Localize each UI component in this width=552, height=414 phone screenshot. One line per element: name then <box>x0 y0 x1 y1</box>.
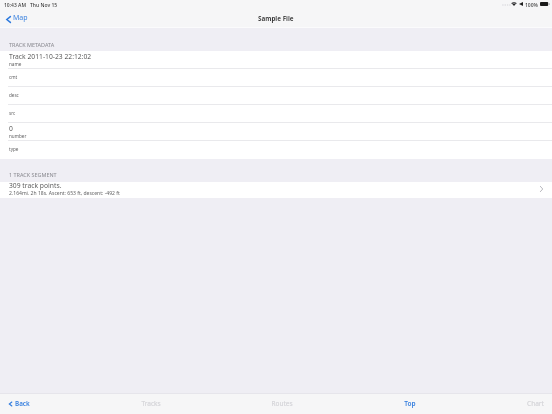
staticText: 0 <box>9 124 13 133</box>
staticText: Tracks <box>141 399 161 408</box>
staticText: src <box>9 110 16 116</box>
staticText: Back <box>15 399 30 408</box>
button[interactable]: Map <box>0 10 35 26</box>
staticText: name <box>9 61 22 67</box>
staticText: 2.164mi. 2h 18s. Ascent: 653 ft, descent… <box>9 190 120 197</box>
staticText: Thu Nov 15 <box>30 2 58 9</box>
button[interactable]: cmt <box>0 69 552 87</box>
button[interactable]: Routes <box>260 393 304 414</box>
staticText: 10:43 AM <box>4 2 27 9</box>
staticText: Routes <box>271 399 293 408</box>
other: Open track segment <box>540 186 543 192</box>
button[interactable]: desc <box>0 87 552 105</box>
button[interactable]: Back <box>0 396 38 411</box>
button[interactable]: src <box>0 105 552 123</box>
staticText: cmt <box>9 74 18 80</box>
button[interactable]: Tracks <box>129 393 173 414</box>
staticText: type <box>9 146 19 152</box>
staticText: TRACK METADATA <box>9 41 55 48</box>
staticText: Chart <box>527 399 544 408</box>
button[interactable]: type <box>0 141 552 159</box>
button[interactable]: Track 2011-10-23 22:12:02 <box>0 51 552 69</box>
button[interactable]: 0 <box>0 123 552 141</box>
staticText: 1 TRACK SEGMENT <box>9 171 57 178</box>
staticText: Sample File <box>258 14 294 23</box>
staticText: Track 2011-10-23 22:12:02 <box>9 52 92 61</box>
button[interactable]: Top <box>388 393 432 414</box>
staticText: Map <box>13 13 28 23</box>
staticText: desc <box>9 92 19 98</box>
staticText: Top <box>404 399 416 408</box>
staticText: 100% <box>525 2 538 9</box>
button[interactable]: Chart <box>513 393 552 414</box>
staticText: 309 track points. <box>9 181 62 190</box>
staticText: number <box>9 133 27 139</box>
button[interactable]: 309 track points. <box>0 182 552 198</box>
